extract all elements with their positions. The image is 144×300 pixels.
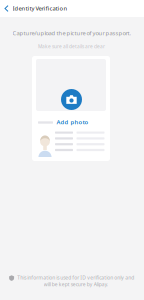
staticText: Add photo	[56, 118, 88, 126]
button[interactable]: Add photo	[61, 89, 82, 110]
staticText: Capture/upload the picture of your passp…	[12, 29, 131, 37]
staticText: Make sure all details are clear	[38, 43, 105, 50]
button[interactable]: Add photo	[56, 118, 88, 126]
button[interactable]: Back	[0, 0, 13, 17]
staticText: Identity Verification	[12, 4, 67, 12]
staticText: This information is used for ID verifica…	[17, 274, 134, 288]
